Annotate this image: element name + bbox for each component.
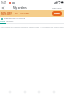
staticText: My orders <box>13 6 27 10</box>
button[interactable]: History <box>6 20 14 23</box>
staticText: 9:41 <box>1 1 7 5</box>
staticText: 50% OFF <box>1 12 12 16</box>
button[interactable]: Orders <box>34 87 44 96</box>
staticText: Claim <box>54 12 60 15</box>
button[interactable]: Home <box>5 87 15 96</box>
button[interactable]: Search <box>20 87 30 96</box>
staticText: History <box>6 20 14 23</box>
staticText: 1st order <box>20 12 30 15</box>
button[interactable]: Account <box>49 87 59 96</box>
staticText: on <box>15 12 18 15</box>
button[interactable]: Active <box>0 20 6 23</box>
staticText: You have no active orders right now — br… <box>0 26 64 29</box>
button[interactable]: Claim <box>52 11 62 16</box>
button[interactable]: Back <box>0 5 5 10</box>
button[interactable]: Get help <box>50 5 64 10</box>
staticText: Active <box>0 20 6 23</box>
staticText: Delivering to Home <box>4 17 25 20</box>
staticText: Get help <box>52 6 62 9</box>
